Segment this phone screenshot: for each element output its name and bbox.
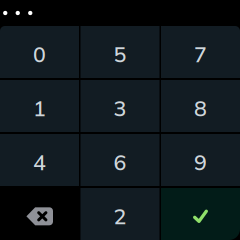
button[interactable]: Confirm — [161, 188, 240, 240]
button[interactable]: 0 — [0, 26, 79, 78]
staticText: 9 — [194, 149, 207, 176]
button[interactable]: 4 — [0, 134, 79, 186]
staticText: 1 — [33, 95, 46, 122]
staticText: 3 — [113, 95, 126, 122]
staticText: 5 — [113, 41, 126, 68]
button[interactable]: Delete — [0, 188, 79, 240]
button[interactable]: 3 — [80, 80, 159, 132]
staticText: 0 — [33, 41, 46, 68]
staticText: 4 — [33, 149, 46, 176]
staticText: 2 — [113, 203, 126, 230]
button[interactable]: 7 — [161, 26, 240, 78]
button[interactable]: 2 — [80, 188, 159, 240]
button[interactable]: 8 — [161, 80, 240, 132]
staticText: 6 — [113, 149, 126, 176]
button[interactable]: 5 — [80, 26, 159, 78]
staticText: 7 — [194, 41, 207, 68]
button[interactable]: 1 — [0, 80, 79, 132]
button[interactable]: 9 — [161, 134, 240, 186]
staticText: 8 — [194, 95, 207, 122]
button[interactable]: 6 — [80, 134, 159, 186]
